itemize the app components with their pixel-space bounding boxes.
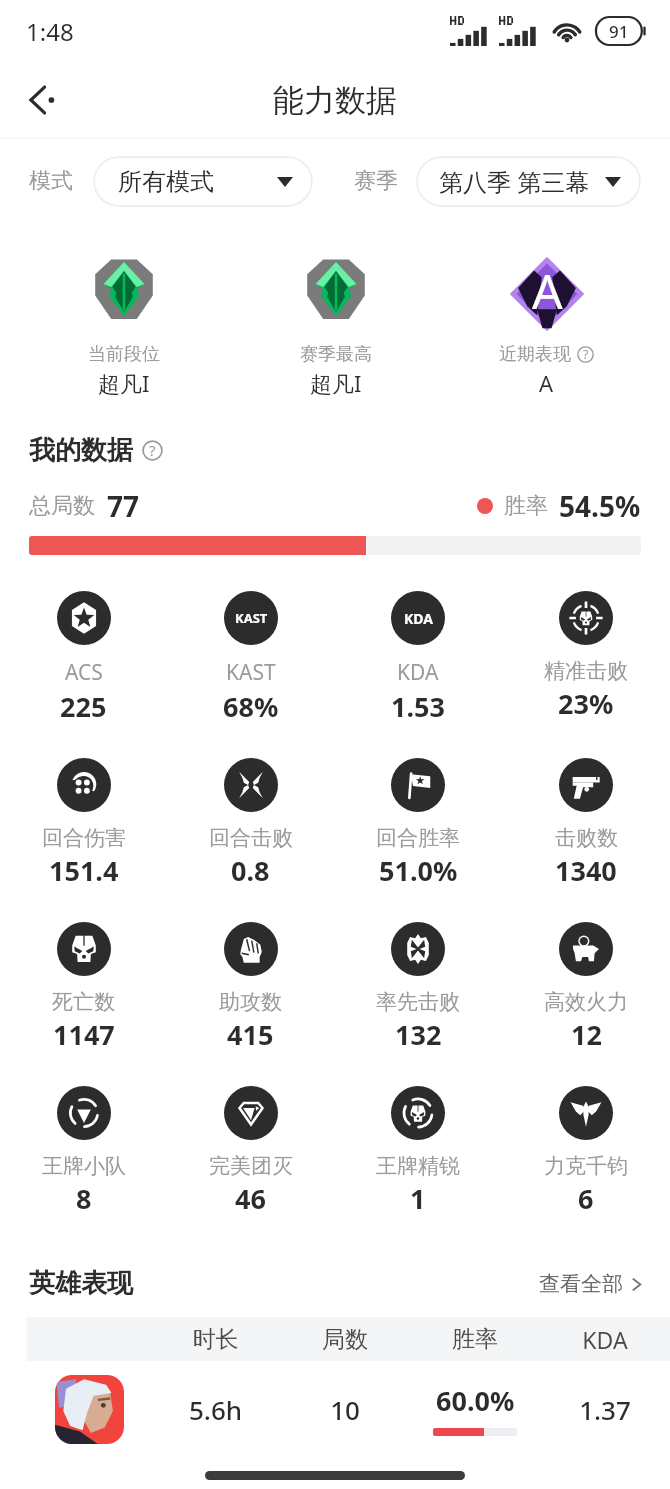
staticText: 局数 (280, 1325, 410, 1354)
staticText: 王牌精锐 (376, 1153, 460, 1179)
staticText: 415 (227, 1016, 274, 1053)
staticText: 当前段位 (88, 343, 160, 366)
staticText: 第八季 第三幕 (439, 165, 590, 198)
staticText: 1340 (555, 852, 617, 889)
button[interactable]: 回合胜率 (334, 758, 502, 889)
staticText: 死亡数 (52, 989, 115, 1015)
button[interactable]: 高效火力 (502, 922, 670, 1053)
staticText: 王牌小队 (42, 1153, 126, 1179)
staticText: 近期表现 (499, 343, 571, 366)
staticText: 1.37 (540, 1392, 670, 1427)
staticText: 1147 (53, 1016, 115, 1053)
staticText: 54.5% (559, 487, 641, 525)
button[interactable]: 率先击败 (334, 922, 502, 1053)
button[interactable]: 王牌小队 (0, 1086, 167, 1217)
staticText: 所有模式 (118, 167, 214, 197)
staticText: 模式 (29, 167, 73, 195)
staticText: 高效火力 (544, 989, 628, 1015)
staticText: 助攻数 (219, 989, 282, 1015)
staticText: 率先击败 (376, 989, 460, 1015)
button[interactable]: 击败数 (502, 758, 670, 889)
staticText: 132 (395, 1016, 442, 1053)
staticText: ACS (65, 658, 103, 687)
staticText: 151.4 (49, 852, 119, 889)
staticText: 时长 (151, 1325, 280, 1354)
button[interactable]: KDA (334, 591, 502, 725)
staticText: 1:48 (26, 15, 74, 48)
staticText: 8 (76, 1180, 92, 1217)
staticText: 完美团灭 (209, 1153, 293, 1179)
button[interactable]: 所有模式 (93, 156, 313, 207)
staticText: ? (149, 440, 156, 461)
staticText: 225 (60, 688, 107, 725)
staticText: 91 (609, 20, 629, 43)
staticText: 赛季最高 (300, 343, 372, 366)
button[interactable]: 死亡数 (0, 922, 167, 1053)
staticText: 超凡I (98, 368, 150, 398)
staticText: KDA (404, 609, 433, 628)
staticText: 77 (107, 487, 140, 525)
staticText: 51.0% (379, 852, 458, 889)
staticText: KAST (235, 609, 268, 627)
staticText: 我的数据 (29, 434, 133, 467)
button[interactable]: Back (10, 70, 70, 130)
staticText: 击败数 (555, 825, 618, 851)
staticText: 英雄表现 (29, 1267, 133, 1300)
button[interactable]: 回合击败 (167, 758, 334, 889)
staticText: 回合伤害 (42, 825, 126, 851)
button[interactable]: A (441, 256, 652, 398)
staticText: ? (583, 346, 589, 363)
button[interactable]: 赛季最高 (230, 256, 441, 398)
button[interactable]: 力克千钧 (502, 1086, 670, 1217)
staticText: A (532, 258, 563, 323)
button[interactable]: 查看全部 (539, 1271, 643, 1297)
staticText: 胜率 (410, 1325, 540, 1354)
staticText: 力克千钧 (544, 1153, 628, 1179)
button[interactable]: 当前段位 (18, 256, 230, 398)
staticText: 0.8 (231, 852, 270, 889)
staticText: 赛季 (354, 167, 398, 195)
staticText: 6 (578, 1180, 594, 1217)
staticText: 60.0% (436, 1382, 515, 1419)
staticText: 能力数据 (273, 81, 397, 120)
staticText: 68% (223, 688, 279, 725)
staticText: 精准击败 (544, 658, 628, 684)
button[interactable]: ACS (0, 591, 167, 725)
staticText: 23% (558, 685, 614, 722)
staticText: 回合胜率 (376, 825, 460, 851)
staticText: 1.53 (391, 688, 445, 725)
button[interactable]: 精准击败 (502, 591, 670, 722)
staticText: A (539, 368, 554, 398)
staticText: 超凡I (310, 368, 362, 398)
button[interactable]: 回合伤害 (0, 758, 167, 889)
staticText: 总局数 (29, 492, 95, 520)
staticText: 回合击败 (209, 825, 293, 851)
staticText: KDA (540, 1324, 670, 1355)
staticText: 胜率 (504, 492, 548, 520)
staticText: 46 (235, 1180, 266, 1217)
staticText: 查看全部 (539, 1271, 623, 1297)
button[interactable]: 助攻数 (167, 922, 334, 1053)
staticText: 10 (280, 1392, 410, 1427)
staticText: 5.6h (151, 1392, 280, 1427)
staticText: 1 (410, 1180, 426, 1217)
button[interactable]: 第八季 第三幕 (416, 156, 641, 207)
button[interactable]: 王牌精锐 (334, 1086, 502, 1217)
staticText: KDA (397, 658, 439, 687)
staticText: 12 (571, 1016, 602, 1053)
button[interactable]: KAST (167, 591, 334, 725)
button[interactable]: 5.6h (27, 1361, 670, 1457)
button[interactable]: 完美团灭 (167, 1086, 334, 1217)
staticText: KAST (226, 658, 276, 687)
